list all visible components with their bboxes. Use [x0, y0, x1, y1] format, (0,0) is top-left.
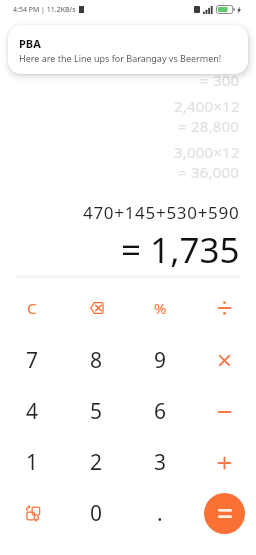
button[interactable]: Plus — [192, 437, 256, 488]
button[interactable]: 0 — [64, 488, 128, 539]
button[interactable]: Divide — [192, 282, 256, 334]
button[interactable]: Unit converter — [0, 488, 64, 539]
staticText: 2,400×12 — [174, 96, 240, 116]
button[interactable]: 4 — [0, 386, 64, 437]
staticText: 1 — [26, 448, 39, 477]
staticText: = 36,000 — [178, 162, 240, 182]
staticText: 3,000×12 — [174, 142, 240, 162]
button[interactable]: 6 — [128, 386, 192, 437]
button[interactable]: Backspace — [64, 282, 128, 334]
staticText: 3 — [154, 448, 167, 477]
staticText: 4:54 PM | 11.2KB/s — [13, 5, 76, 15]
button[interactable]: C — [0, 282, 64, 334]
button[interactable]: PBA — [8, 25, 248, 74]
button[interactable]: Multiply — [192, 334, 256, 386]
staticText: 2 — [90, 448, 103, 477]
staticText: 7 — [26, 346, 39, 375]
staticText: . — [157, 499, 163, 528]
staticText: 8 — [90, 346, 103, 375]
button[interactable]: 5 — [64, 386, 128, 437]
staticText: 4 — [26, 397, 39, 426]
staticText: = 28,800 — [178, 116, 240, 136]
staticText: 9 — [154, 346, 167, 375]
button[interactable]: % — [128, 282, 192, 334]
staticText: 5 — [90, 397, 103, 426]
staticText: Here are the Line ups for Barangay vs Be… — [19, 52, 222, 64]
button[interactable]: Minus — [192, 386, 256, 437]
button[interactable]: Equals — [204, 493, 245, 534]
button[interactable]: . — [128, 488, 192, 539]
button[interactable]: 2 — [64, 437, 128, 488]
staticText: = 300 — [200, 70, 240, 90]
button[interactable]: 8 — [64, 334, 128, 386]
button[interactable]: 7 — [0, 334, 64, 386]
button[interactable]: 9 — [128, 334, 192, 386]
staticText: PBA — [19, 36, 41, 51]
button[interactable]: 3 — [128, 437, 192, 488]
staticText: C — [27, 298, 37, 318]
staticText: 470+145+530+590 — [83, 201, 240, 224]
staticText: 0 — [90, 499, 103, 528]
staticText: % — [154, 298, 167, 318]
staticText: = 1,735 — [121, 226, 240, 274]
staticText: 6 — [154, 397, 167, 426]
button[interactable]: 1 — [0, 437, 64, 488]
